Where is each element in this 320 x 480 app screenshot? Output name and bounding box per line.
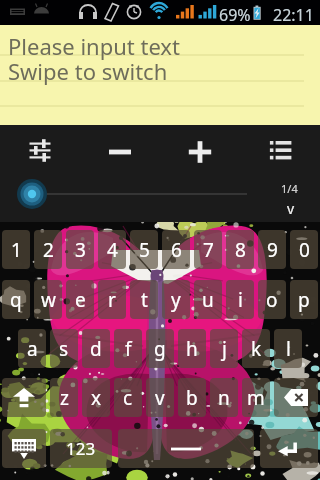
- button[interactable]: 8: [226, 230, 254, 269]
- staticText: 2: [43, 237, 54, 263]
- staticText: 22:11: [273, 4, 314, 26]
- button[interactable]: s: [50, 329, 78, 368]
- button[interactable]: v: [146, 378, 174, 417]
- staticText: 4: [107, 237, 118, 263]
- button[interactable]: d: [82, 329, 110, 368]
- button[interactable]: u: [194, 280, 222, 319]
- button[interactable]: o: [258, 280, 286, 319]
- staticText: z: [60, 385, 69, 411]
- staticText: 3: [75, 237, 86, 263]
- staticText: w: [41, 287, 56, 313]
- staticText: n: [218, 385, 230, 411]
- button[interactable]: 9: [258, 230, 286, 269]
- button[interactable]: 4: [98, 230, 126, 269]
- staticText: p: [298, 287, 310, 313]
- button[interactable]: Shift: [2, 378, 46, 417]
- staticText: 0: [299, 237, 310, 263]
- button[interactable]: Space: [118, 429, 254, 468]
- staticText: 9: [267, 237, 278, 263]
- staticText: 1: [11, 237, 22, 263]
- button[interactable]: a: [18, 329, 46, 368]
- staticText: y: [171, 287, 181, 313]
- button[interactable]: g: [146, 329, 174, 368]
- button[interactable]: i: [226, 280, 254, 319]
- button[interactable]: q: [2, 280, 30, 319]
- staticText: j: [222, 336, 227, 362]
- staticText: q: [10, 287, 22, 313]
- button[interactable]: r: [98, 280, 126, 319]
- button[interactable]: y: [162, 280, 190, 319]
- staticText: c: [123, 385, 133, 411]
- staticText: t: [141, 287, 148, 313]
- button[interactable]: Backspace: [274, 378, 318, 417]
- button[interactable]: j: [210, 329, 238, 368]
- button[interactable]: 0: [290, 230, 318, 269]
- button[interactable]: e: [66, 280, 94, 319]
- staticText: 5: [139, 237, 150, 263]
- button[interactable]: List: [266, 138, 294, 166]
- staticText: b: [186, 385, 198, 411]
- button[interactable]: 2: [34, 230, 62, 269]
- button[interactable]: Increase: [186, 138, 214, 166]
- staticText: 7: [203, 237, 214, 263]
- button[interactable]: Settings: [26, 138, 54, 166]
- button[interactable]: 6: [162, 230, 190, 269]
- staticText: m: [247, 385, 265, 411]
- staticText: v: [287, 199, 295, 218]
- staticText: u: [202, 287, 214, 313]
- button[interactable]: p: [290, 280, 318, 319]
- staticText: h: [186, 336, 198, 362]
- button[interactable]: b: [178, 378, 206, 417]
- button[interactable]: z: [50, 378, 78, 417]
- button[interactable]: 3: [66, 230, 94, 269]
- button[interactable]: x: [82, 378, 110, 417]
- staticText: k: [251, 336, 262, 362]
- staticText: x: [91, 385, 102, 411]
- staticText: i: [238, 287, 243, 313]
- staticText: l: [286, 336, 291, 362]
- staticText: s: [59, 336, 69, 362]
- button[interactable]: h: [178, 329, 206, 368]
- button[interactable]: 7: [194, 230, 222, 269]
- button[interactable]: Keyboard: [2, 429, 46, 468]
- button[interactable]: 1: [2, 230, 30, 269]
- staticText: Please input text: [8, 31, 180, 61]
- button[interactable]: c: [114, 378, 142, 417]
- button[interactable]: Enter: [260, 429, 318, 468]
- staticText: 123: [66, 437, 96, 460]
- staticText: v: [155, 385, 165, 411]
- button[interactable]: w: [34, 280, 62, 319]
- staticText: e: [75, 287, 86, 313]
- staticText: f: [125, 336, 132, 362]
- button[interactable]: l: [274, 329, 302, 368]
- staticText: o: [266, 287, 278, 313]
- staticText: g: [154, 336, 166, 362]
- button[interactable]: n: [210, 378, 238, 417]
- button[interactable]: Decrease: [106, 138, 134, 166]
- staticText: 8: [235, 237, 246, 263]
- staticText: 6: [171, 237, 182, 263]
- button[interactable]: k: [242, 329, 270, 368]
- staticText: d: [90, 336, 102, 362]
- staticText: 1/4: [281, 181, 298, 196]
- button[interactable]: t: [130, 280, 158, 319]
- button[interactable]: 123: [50, 429, 112, 468]
- button[interactable]: 5: [130, 230, 158, 269]
- staticText: 69%: [219, 4, 251, 26]
- button[interactable]: f: [114, 329, 142, 368]
- staticText: Swipe to switch: [8, 56, 168, 86]
- staticText: a: [27, 336, 38, 362]
- staticText: r: [108, 287, 116, 313]
- button[interactable]: m: [242, 378, 270, 417]
